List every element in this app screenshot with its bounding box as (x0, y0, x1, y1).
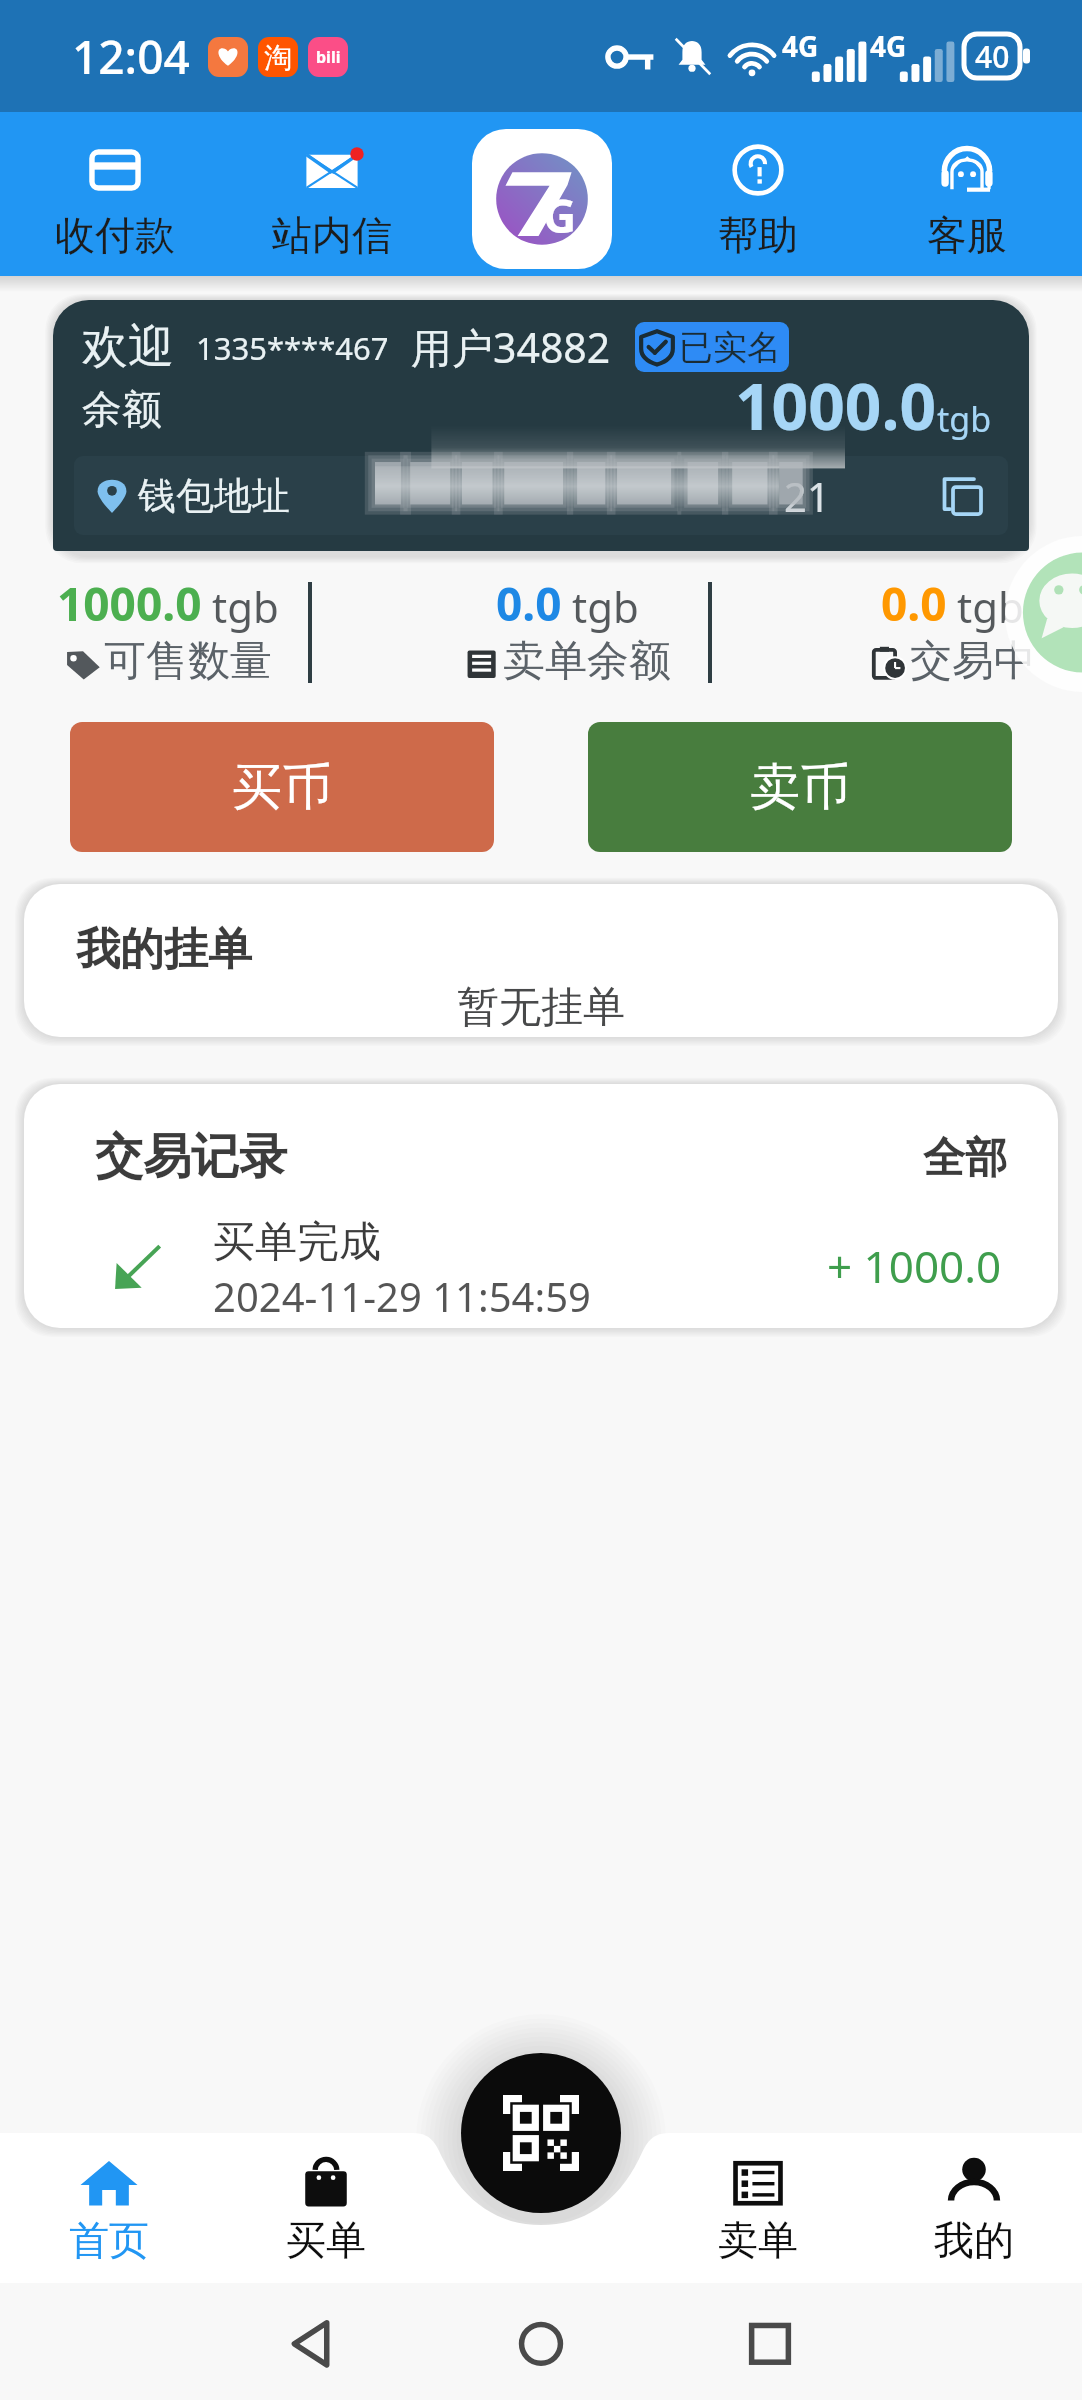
button[interactable]: 卖币 (588, 722, 1012, 852)
staticText: 首页 (69, 2215, 149, 2265)
button[interactable]: 我的 (866, 2133, 1082, 2283)
staticText: 站内信 (272, 210, 392, 260)
staticText: 我的挂单 (76, 922, 252, 977)
staticText: 40 (975, 36, 1010, 77)
staticText: 0.0 (881, 572, 947, 635)
button[interactable]: 我的挂单 (24, 884, 1058, 1037)
button[interactable]: 首页 (0, 2133, 217, 2283)
staticText: 收付款 (55, 210, 175, 260)
staticText: + 1000.0 (827, 1236, 1002, 1296)
staticText: 我的 (934, 2215, 1014, 2265)
staticText: 买币 (232, 756, 332, 819)
staticText: 余额 (82, 384, 162, 434)
staticText: 4G (782, 27, 819, 65)
staticText: 暂无挂单 (457, 981, 625, 1034)
staticText: 淘 (264, 40, 292, 75)
staticText: 卖币 (750, 756, 850, 819)
staticText: 4G (870, 27, 907, 65)
button[interactable]: 钱包地址 (74, 456, 1008, 535)
staticText: 买单 (286, 2215, 366, 2265)
staticText: 卖单 (718, 2215, 798, 2265)
staticText: 交易记录 (95, 1127, 287, 1187)
button[interactable]: Scan QR code (461, 2053, 621, 2213)
button[interactable]: 收付款 (6, 117, 223, 281)
staticText: 12:04 (72, 25, 190, 88)
staticText: 1000.0 (735, 362, 937, 449)
button[interactable]: App logo (472, 129, 612, 269)
staticText: 21 (784, 469, 830, 523)
button[interactable]: 全部 (923, 1132, 1007, 1185)
staticText: 欢迎 (82, 318, 174, 376)
button[interactable]: 买单完成 (24, 1216, 1058, 1316)
staticText: 0.0 (496, 572, 562, 635)
button[interactable]: 买币 (70, 722, 494, 852)
staticText: 卖单余额 (503, 635, 671, 688)
staticText: tgb (212, 578, 279, 635)
staticText: 钱包地址 (138, 472, 290, 520)
button[interactable]: 卖单 (650, 2133, 866, 2283)
staticText: 1000.0 (57, 572, 202, 635)
staticText: 1335****467 (196, 327, 389, 369)
button[interactable]: Copy wallet address (938, 471, 988, 521)
staticText: tgb (957, 578, 1024, 635)
staticText: 2024-11-29 11:54:59 (213, 1269, 591, 1316)
button[interactable]: 帮助 (650, 117, 866, 281)
staticText: 帮助 (718, 210, 798, 260)
staticText: G (543, 184, 577, 247)
staticText: 可售数量 (104, 635, 272, 688)
staticText: tgb (937, 396, 992, 442)
staticText: 交易中 (910, 635, 1036, 688)
staticText: bili (316, 46, 341, 68)
button[interactable]: 1000.0 (13, 565, 322, 695)
button[interactable]: 客服 (859, 117, 1075, 281)
staticText: 买单完成 (213, 1216, 381, 1269)
button[interactable]: 买单 (217, 2133, 434, 2283)
staticText: 客服 (927, 210, 1007, 260)
button[interactable]: 站内信 (223, 117, 440, 281)
button[interactable]: 0.0 (768, 565, 1082, 695)
staticText: 用户34882 (411, 319, 611, 375)
button[interactable]: 0.0 (369, 565, 765, 695)
button[interactable]: WeChat customer service (1005, 536, 1082, 692)
staticText: 全部 (923, 1132, 1007, 1185)
staticText: 已实名 (679, 326, 781, 369)
staticText: tgb (572, 578, 639, 635)
